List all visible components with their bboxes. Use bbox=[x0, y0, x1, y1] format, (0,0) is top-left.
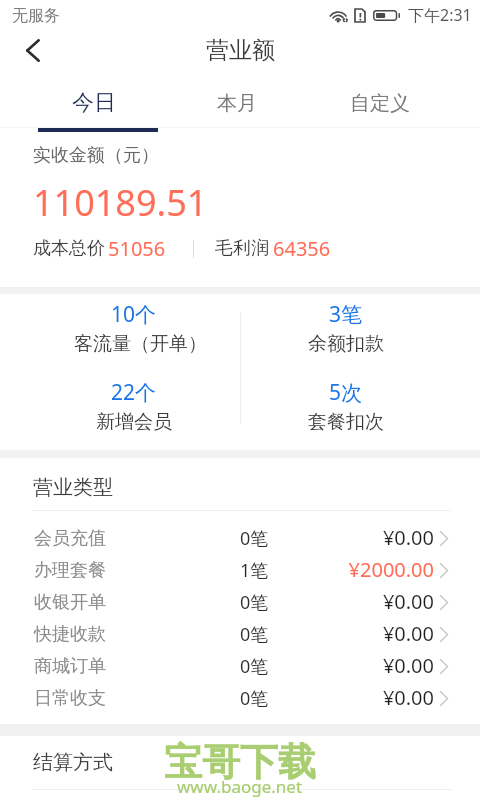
staticText: ¥0.00 bbox=[382, 588, 434, 615]
staticText: 下午2:31 bbox=[408, 4, 472, 26]
staticText: 毛利润 bbox=[215, 237, 269, 260]
button[interactable]: 会员充值 bbox=[0, 522, 480, 554]
staticText: 套餐扣次 bbox=[308, 410, 384, 434]
staticText: 0笔 bbox=[240, 526, 269, 551]
staticText: ¥0.00 bbox=[382, 620, 434, 647]
staticText: 成本总价 bbox=[33, 237, 105, 260]
button[interactable]: 本月 bbox=[165, 76, 308, 132]
staticText: 快捷收款 bbox=[34, 623, 106, 646]
staticText: 宝哥下载 bbox=[164, 738, 316, 786]
staticText: 10个 bbox=[111, 300, 157, 329]
staticText: 客流量（开单） bbox=[74, 332, 207, 356]
button[interactable]: 商城订单 bbox=[0, 650, 480, 682]
staticText: 51056 bbox=[108, 235, 166, 262]
staticText: ¥0.00 bbox=[382, 684, 434, 711]
staticText: 3笔 bbox=[329, 300, 363, 329]
staticText: 0笔 bbox=[240, 622, 269, 647]
staticText: 结算方式 bbox=[33, 750, 113, 775]
staticText: 0笔 bbox=[240, 686, 269, 711]
button[interactable]: Back bbox=[0, 30, 66, 76]
button[interactable]: 自定义 bbox=[308, 76, 451, 132]
staticText: 办理套餐 bbox=[34, 559, 106, 582]
button[interactable]: 22个 bbox=[28, 372, 240, 450]
staticText: 实收金额（元） bbox=[33, 144, 159, 167]
staticText: 商城订单 bbox=[34, 655, 106, 678]
staticText: 1笔 bbox=[240, 558, 269, 583]
staticText: 营业类型 bbox=[33, 475, 113, 500]
button[interactable]: 今日 bbox=[22, 76, 165, 132]
staticText: 110189.51 bbox=[33, 178, 208, 227]
button[interactable]: 日常收支 bbox=[0, 682, 480, 714]
staticText: 本月 bbox=[217, 91, 257, 116]
button[interactable]: 3笔 bbox=[240, 294, 452, 372]
staticText: 自定义 bbox=[350, 91, 410, 116]
button[interactable]: 快捷收款 bbox=[0, 618, 480, 650]
staticText: 64356 bbox=[273, 235, 331, 262]
button[interactable]: 收银开单 bbox=[0, 586, 480, 618]
staticText: 余额扣款 bbox=[308, 332, 384, 356]
button[interactable]: 5次 bbox=[240, 372, 452, 450]
staticText: 营业额 bbox=[206, 36, 275, 65]
staticText: ¥0.00 bbox=[382, 524, 434, 551]
staticText: 22个 bbox=[111, 378, 157, 407]
staticText: 无服务 bbox=[12, 6, 60, 26]
staticText: 日常收支 bbox=[34, 687, 106, 710]
button[interactable]: 办理套餐 bbox=[0, 554, 480, 586]
staticText: 收银开单 bbox=[34, 591, 106, 614]
staticText: 会员充值 bbox=[34, 527, 106, 550]
staticText: ¥2000.00 bbox=[348, 556, 434, 583]
staticText: 今日 bbox=[72, 89, 116, 117]
button[interactable]: 10个 bbox=[28, 294, 240, 372]
staticText: 0笔 bbox=[240, 654, 269, 679]
staticText: www.baoge.net bbox=[177, 775, 303, 798]
staticText: 5次 bbox=[329, 378, 363, 407]
staticText: 0笔 bbox=[240, 590, 269, 615]
staticText: 新增会员 bbox=[96, 410, 172, 434]
staticText: ¥0.00 bbox=[382, 652, 434, 679]
